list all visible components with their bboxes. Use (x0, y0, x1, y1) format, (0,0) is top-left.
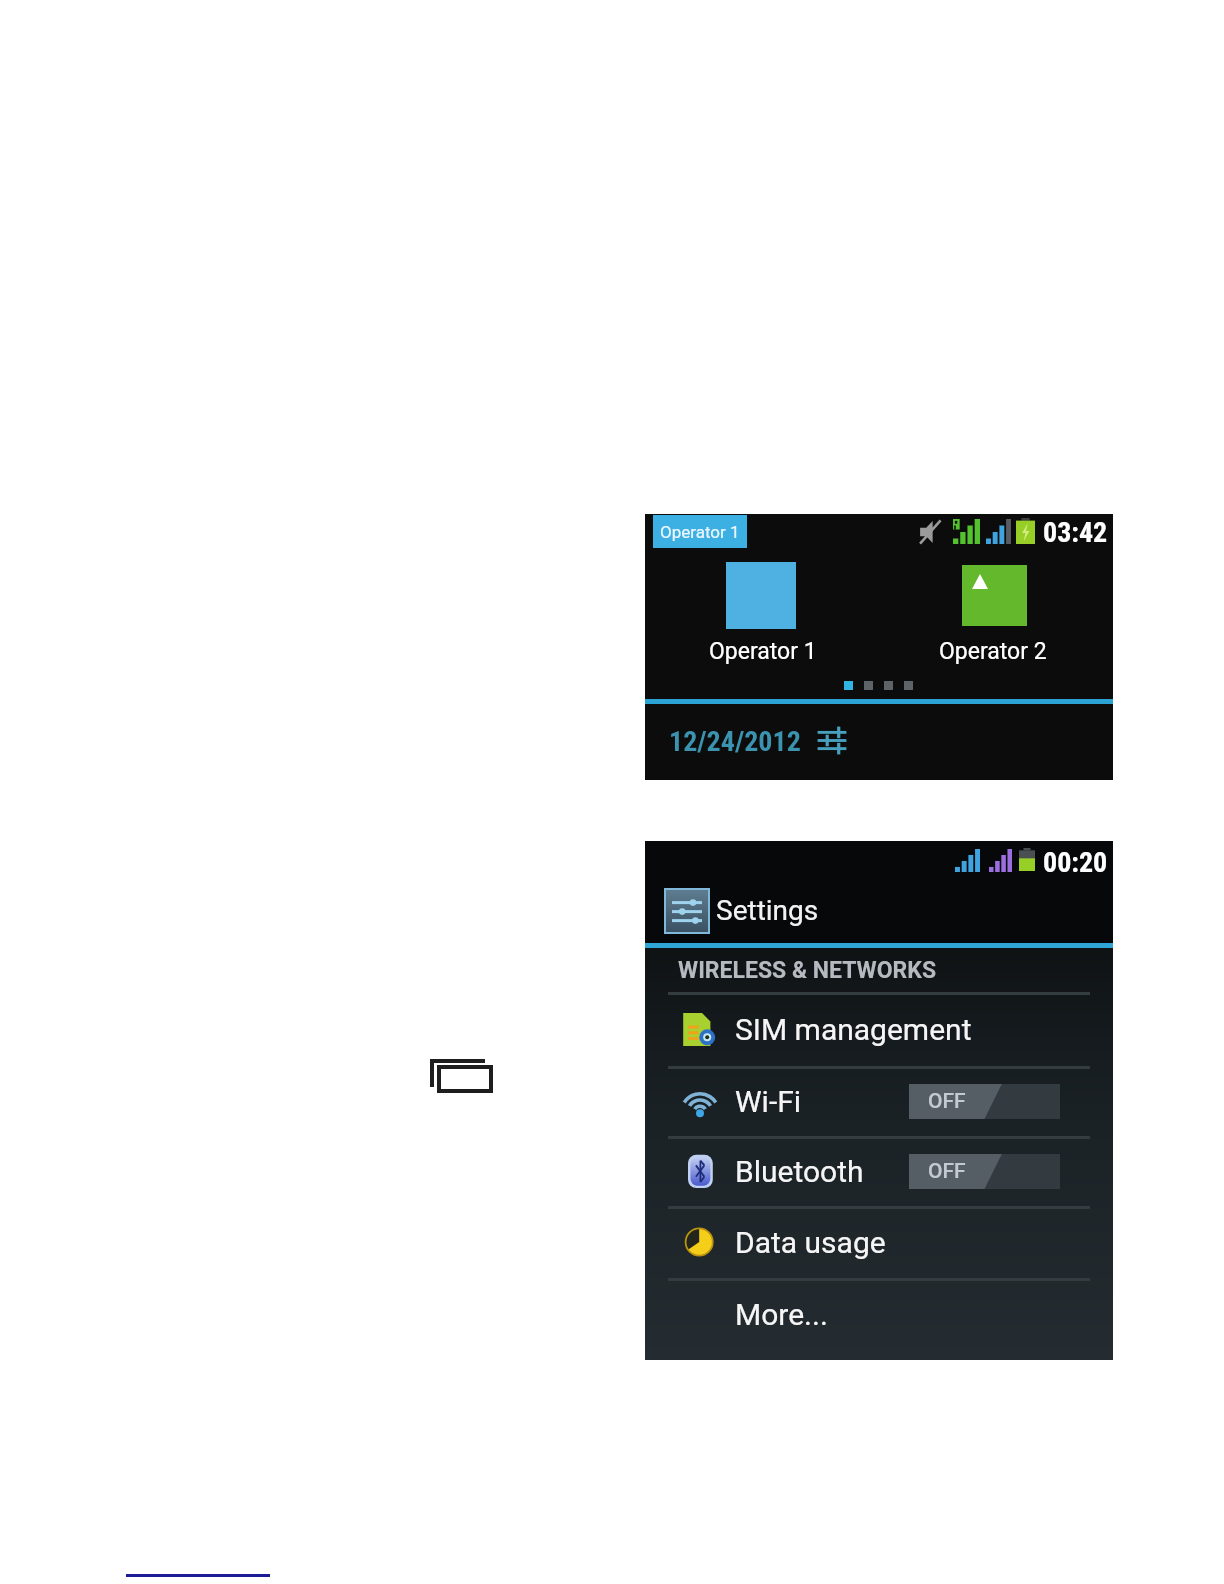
button[interactable]: OFF (909, 1084, 1060, 1119)
staticText: 03:42 (1043, 516, 1108, 549)
button[interactable] (962, 565, 1027, 626)
staticText: More... (735, 1297, 828, 1332)
staticText: OFF (928, 1089, 966, 1114)
button[interactable]: SIM management (645, 992, 1113, 1066)
staticText: 00:20 (1043, 846, 1108, 879)
button[interactable]: OFF (909, 1154, 1060, 1189)
button[interactable]: Wi-Fi (645, 1066, 1113, 1136)
staticText: Data usage (735, 1225, 886, 1260)
button[interactable]: Bluetooth (645, 1136, 1113, 1206)
staticText: Wi-Fi (735, 1084, 802, 1119)
button[interactable]: Settings (664, 888, 710, 934)
staticText: Operator 1 (709, 638, 817, 665)
staticText: Operator 2 (939, 638, 1047, 665)
button[interactable]: More... (645, 1278, 1113, 1350)
staticText: Bluetooth (735, 1154, 864, 1189)
staticText: Operator 1 (660, 522, 740, 542)
button[interactable]: Copy (428, 1055, 500, 1099)
button[interactable]: Data usage (645, 1206, 1113, 1278)
staticText: OFF (928, 1159, 966, 1184)
button[interactable]: 12/24/2012 (665, 717, 805, 761)
staticText: WIRELESS & NETWORKS (678, 957, 937, 984)
button[interactable]: Settings (816, 726, 848, 755)
staticText: SIM management (735, 1012, 972, 1047)
other: Silent mode (919, 519, 941, 545)
staticText: 12/24/2012 (669, 725, 801, 758)
staticText: Settings (716, 894, 819, 927)
button[interactable]: Operator 1 (653, 515, 747, 548)
